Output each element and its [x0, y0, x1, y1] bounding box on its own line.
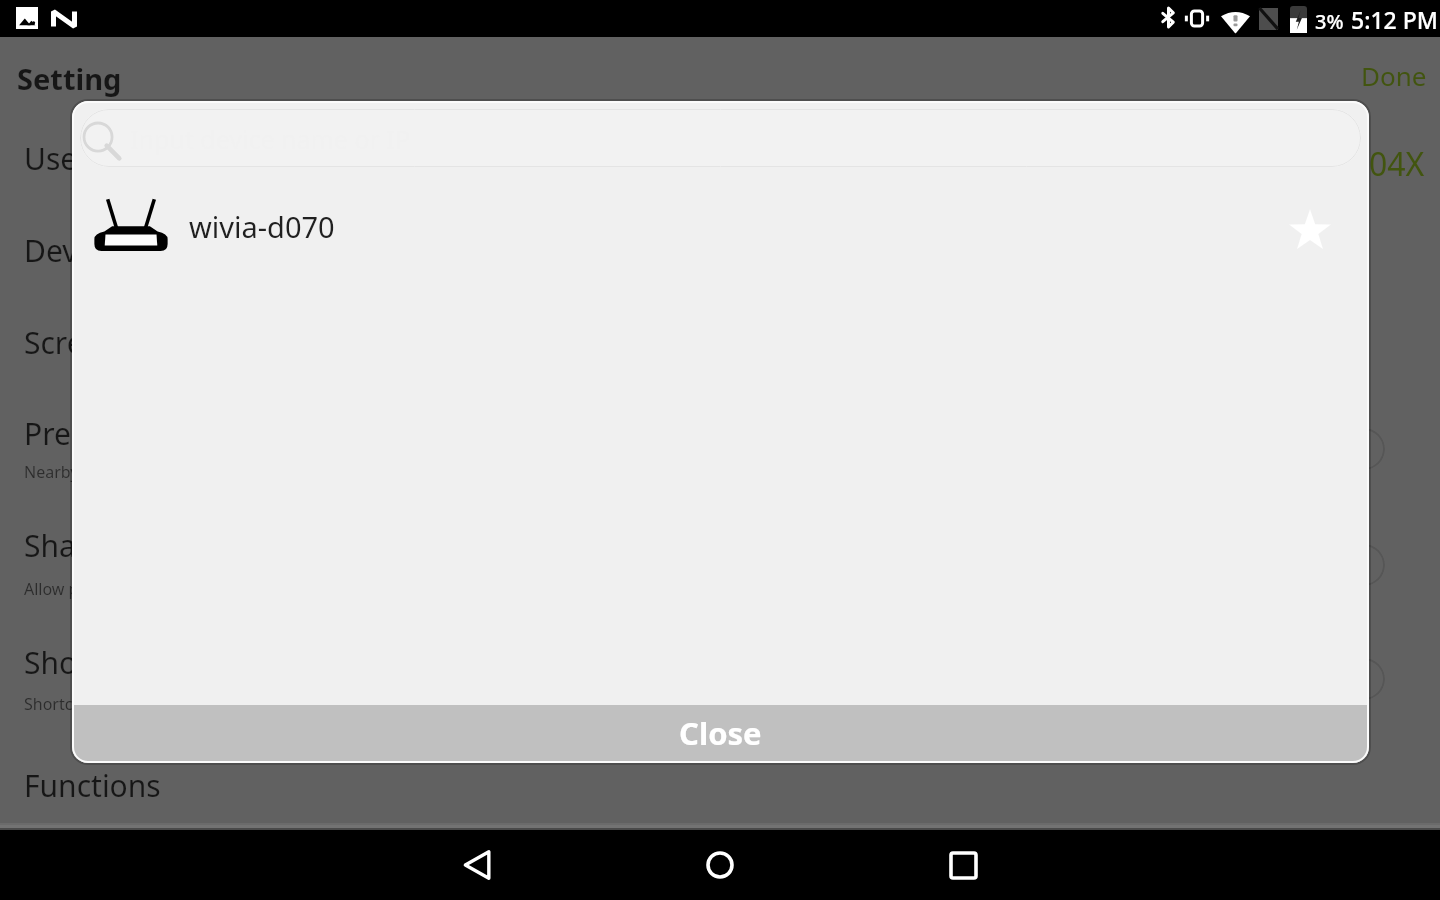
button[interactable]: Close: [72, 705, 1369, 763]
button[interactable]: Functions: [0, 765, 1440, 813]
staticText: Functions: [24, 765, 161, 806]
staticText: Shortcut key setting: [24, 693, 174, 715]
staticText: User Name: [24, 138, 183, 179]
staticText: 04X: [1369, 142, 1425, 186]
button[interactable]: Done: [1361, 58, 1427, 93]
button[interactable]: Presentation: [0, 413, 1440, 493]
button[interactable]: Favorite: [1282, 202, 1338, 258]
button[interactable]: Toggle: [1300, 658, 1385, 700]
staticText: Shortcut: [24, 642, 145, 683]
button[interactable]: Shortcut: [0, 642, 1440, 722]
staticText: Share: [24, 525, 105, 566]
button[interactable]: User Name: [0, 138, 1440, 186]
button[interactable]: Home: [685, 830, 755, 900]
staticText: Allow peers to share screen: [24, 578, 231, 600]
button[interactable]: wivia-d070: [72, 175, 1369, 271]
button[interactable]: Setting: [17, 59, 122, 98]
staticText: 5:12 PM: [1351, 4, 1438, 35]
staticText: Device Name: [24, 230, 209, 271]
button[interactable]: Recents: [928, 830, 998, 900]
staticText: Done: [1361, 58, 1427, 93]
button[interactable]: Toggle: [1300, 544, 1385, 586]
button[interactable]: Toggle: [1300, 428, 1385, 470]
button[interactable]: Back: [442, 830, 512, 900]
button[interactable]: Share: [0, 525, 1440, 605]
staticText: wivia-d070: [189, 207, 335, 246]
button[interactable]: Device Name: [0, 230, 1440, 278]
staticText: Presentation: [24, 413, 204, 454]
staticText: Close: [679, 712, 762, 754]
staticText: Screen: [24, 322, 120, 363]
staticText: Setting: [17, 59, 122, 98]
button[interactable]: Input device name or IP: [80, 109, 1361, 167]
staticText: 3%: [1315, 8, 1344, 35]
button[interactable]: Screen: [0, 322, 1440, 370]
staticText: Nearby device auto search: [24, 461, 223, 483]
